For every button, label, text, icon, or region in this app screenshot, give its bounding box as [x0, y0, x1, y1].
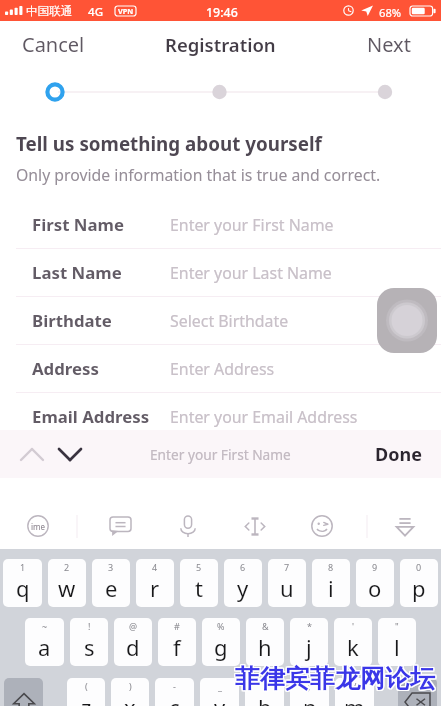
- staticText: 1: [20, 561, 26, 573]
- button[interactable]: 5: [180, 559, 218, 607]
- button[interactable]: (: [67, 678, 105, 706]
- button[interactable]: Backspace: [398, 678, 437, 706]
- button[interactable]: Emoji: [300, 504, 344, 548]
- staticText: Last Name: [32, 261, 122, 284]
- button[interactable]: Cancel: [0, 21, 107, 68]
- staticText: Select Birthdate: [170, 310, 289, 332]
- button[interactable]: Last Name: [0, 249, 441, 296]
- staticText: ': [352, 620, 355, 632]
- button[interactable]: 1: [3, 559, 42, 607]
- staticText: 7: [284, 561, 290, 573]
- button[interactable]: ~: [25, 618, 64, 666]
- button[interactable]: 9: [356, 559, 394, 607]
- staticText: ): [129, 680, 132, 692]
- button[interactable]: _: [200, 678, 239, 706]
- button[interactable]: !: [70, 618, 108, 666]
- staticText: !: [88, 620, 91, 632]
- button[interactable]: Messages: [98, 504, 142, 548]
- button[interactable]: %: [202, 618, 240, 666]
- staticText: 3: [108, 561, 114, 573]
- staticText: i: [328, 573, 334, 603]
- staticText: VPN: [118, 6, 134, 16]
- button[interactable]: ': [334, 618, 372, 666]
- button[interactable]: *: [290, 618, 328, 666]
- button[interactable]: @: [114, 618, 152, 666]
- staticText: Only provide information that is true an…: [16, 164, 381, 186]
- staticText: c: [169, 692, 180, 706]
- staticText: -: [173, 680, 176, 692]
- staticText: 6: [240, 561, 246, 573]
- button[interactable]: Next: [345, 21, 441, 68]
- button[interactable]: 8: [312, 559, 350, 607]
- staticText: v: [214, 692, 226, 706]
- staticText: /: [353, 680, 357, 692]
- staticText: ": [395, 620, 399, 632]
- button[interactable]: /: [335, 678, 374, 706]
- staticText: k: [347, 632, 359, 662]
- staticText: Email Address: [32, 405, 150, 428]
- staticText: 5: [196, 561, 202, 573]
- staticText: 菲律宾菲龙网论坛: [234, 663, 434, 694]
- button[interactable]: 3: [92, 559, 130, 607]
- staticText: z: [81, 692, 92, 706]
- button[interactable]: ): [111, 678, 149, 706]
- button[interactable]: 7: [268, 559, 306, 607]
- button[interactable]: -: [155, 678, 194, 706]
- staticText: Enter Address: [170, 358, 275, 380]
- button[interactable]: 6: [224, 559, 262, 607]
- staticText: w: [58, 573, 76, 603]
- staticText: Birthdate: [32, 309, 112, 332]
- button[interactable]: &: [246, 618, 284, 666]
- button[interactable]: Next field: [50, 430, 90, 478]
- staticText: %: [217, 620, 225, 632]
- staticText: 4: [152, 561, 158, 573]
- staticText: e: [105, 573, 118, 603]
- button[interactable]: #: [158, 618, 196, 666]
- button[interactable]: ": [378, 618, 416, 666]
- staticText: 菲律宾菲龙网论坛: [235, 663, 435, 694]
- staticText: n: [303, 692, 317, 706]
- staticText: u: [280, 573, 294, 603]
- button[interactable]: Previous field: [12, 430, 52, 478]
- button[interactable]: 0: [400, 559, 438, 607]
- button[interactable]: Input method: [16, 504, 60, 548]
- staticText: 菲律宾菲龙网论坛: [234, 662, 434, 693]
- staticText: 菲律宾菲龙网论坛: [235, 662, 435, 693]
- button[interactable]: Voice input: [166, 504, 210, 548]
- button[interactable]: First Name: [0, 201, 441, 248]
- button[interactable]: ;: [290, 678, 329, 706]
- staticText: &: [262, 620, 269, 632]
- staticText: 4G: [88, 4, 104, 20]
- staticText: 68%: [379, 5, 402, 20]
- button[interactable]: Email Address: [0, 393, 441, 440]
- staticText: 2: [64, 561, 70, 573]
- staticText: b: [258, 692, 272, 706]
- button[interactable]: Hide keyboard: [383, 504, 427, 548]
- staticText: j: [306, 632, 312, 662]
- staticText: 菲律宾菲龙网论坛: [236, 664, 436, 695]
- button[interactable]: Shift: [4, 678, 43, 706]
- button[interactable]: Address: [0, 345, 441, 392]
- staticText: g: [214, 632, 228, 662]
- staticText: Enter your First Name: [170, 214, 334, 236]
- staticText: Tell us something about yourself: [16, 131, 322, 157]
- button[interactable]: Birthdate: [0, 297, 441, 344]
- button[interactable]: Cursor control: [233, 504, 277, 548]
- staticText: ~: [42, 620, 48, 632]
- staticText: m: [344, 692, 365, 706]
- staticText: First Name: [32, 213, 124, 236]
- staticText: :: [263, 680, 266, 692]
- staticText: 中国联通: [26, 4, 73, 19]
- staticText: r: [150, 573, 160, 603]
- staticText: ime: [31, 521, 46, 532]
- staticText: q: [16, 573, 30, 603]
- staticText: 菲律宾菲龙网论坛: [234, 664, 434, 695]
- button[interactable]: :: [245, 678, 284, 706]
- button[interactable]: Done: [357, 432, 441, 477]
- button[interactable]: 4: [136, 559, 174, 607]
- button[interactable]: 2: [48, 559, 86, 607]
- staticText: p: [412, 573, 426, 603]
- staticText: 9: [372, 561, 378, 573]
- staticText: 菲律宾菲龙网论坛: [235, 664, 435, 695]
- staticText: f: [173, 632, 181, 662]
